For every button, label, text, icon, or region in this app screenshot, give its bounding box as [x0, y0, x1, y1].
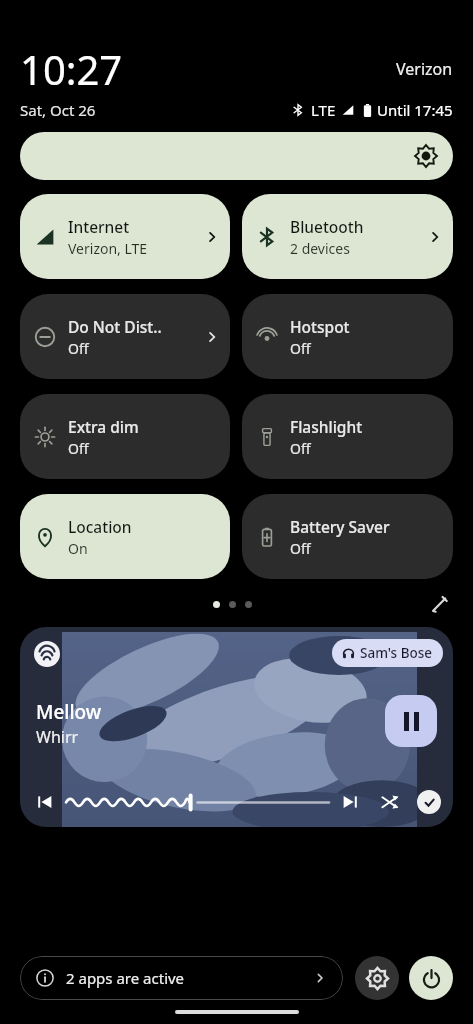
button[interactable]: Previous — [32, 789, 58, 815]
button[interactable]: Settings — [355, 956, 399, 1000]
button[interactable]: Bluetooth — [242, 194, 453, 279]
staticText: Battery Saver — [290, 516, 390, 537]
button[interactable]: Hotspot — [242, 294, 453, 379]
button[interactable]: Pause — [385, 695, 437, 747]
button[interactable]: Extra dim — [20, 394, 230, 479]
staticText: Mellow — [36, 699, 102, 725]
staticText: 10:27 — [20, 42, 123, 96]
staticText: Hotspot — [290, 316, 350, 337]
button[interactable]: Flashlight — [242, 394, 453, 479]
staticText: Off — [290, 439, 311, 458]
button[interactable]: Do Not Dist.. — [20, 294, 230, 379]
staticText: Off — [68, 339, 89, 358]
staticText: Extra dim — [68, 416, 139, 437]
button[interactable]: Saved — [417, 790, 441, 814]
button[interactable]: Next — [337, 789, 363, 815]
button[interactable]: Brightness — [20, 132, 453, 180]
staticText: Internet — [68, 216, 130, 237]
staticText: LTE — [311, 100, 336, 120]
staticText: Sam's Bose — [360, 644, 433, 662]
staticText: Until 17:45 — [377, 100, 453, 120]
staticText: Verizon — [396, 58, 453, 80]
staticText: 2 apps are active — [66, 968, 185, 988]
staticText: Verizon, LTE — [68, 239, 148, 258]
staticText: Off — [68, 439, 89, 458]
button[interactable]: Location — [20, 494, 230, 579]
button[interactable]: Edit tiles — [425, 590, 453, 618]
staticText: Whirr — [36, 726, 79, 748]
button[interactable]: Sam's Bose — [20, 627, 453, 827]
staticText: 2 devices — [290, 239, 350, 258]
staticText: On — [68, 539, 88, 558]
staticText: Off — [290, 339, 311, 358]
button[interactable]: Sam's Bose — [332, 639, 443, 667]
staticText: Location — [68, 516, 132, 537]
button[interactable]: 2 apps are active — [20, 956, 343, 1000]
button[interactable]: Shuffle — [377, 789, 403, 815]
staticText: Do Not Dist.. — [68, 316, 162, 337]
staticText: Bluetooth — [290, 216, 364, 237]
button[interactable]: Power — [409, 956, 453, 1000]
staticText: Sat, Oct 26 — [20, 100, 96, 120]
button[interactable]: Battery Saver — [242, 494, 453, 579]
button[interactable]: Internet — [20, 194, 230, 279]
staticText: Flashlight — [290, 416, 363, 437]
staticText: Off — [290, 539, 311, 558]
